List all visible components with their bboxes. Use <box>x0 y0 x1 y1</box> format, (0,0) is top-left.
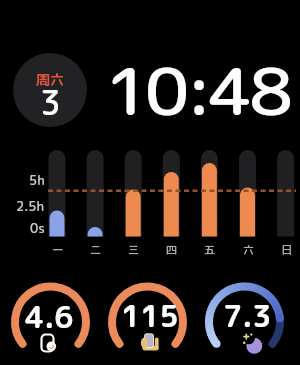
staticText: 三 <box>128 242 139 257</box>
button[interactable] <box>11 282 91 362</box>
staticText: 六 <box>243 242 254 257</box>
staticText: 5h <box>29 171 45 189</box>
button[interactable] <box>13 53 87 127</box>
staticText: 二 <box>90 242 101 257</box>
button[interactable] <box>44 145 296 257</box>
staticText: 2.5h <box>16 197 45 215</box>
staticText: 115 <box>121 295 179 335</box>
staticText: 0s <box>30 219 45 237</box>
staticText: 五 <box>204 242 215 257</box>
staticText: 日 <box>281 242 292 257</box>
staticText: 7.3 <box>223 295 272 335</box>
button[interactable] <box>108 282 188 362</box>
staticText: 四 <box>166 242 177 257</box>
button[interactable] <box>205 282 285 362</box>
staticText: 3 <box>40 80 61 122</box>
staticText: 一 <box>52 242 63 257</box>
staticText: 4.6 <box>25 296 74 336</box>
staticText: 10:48 <box>105 48 289 136</box>
staticText: 周六 <box>36 70 64 88</box>
